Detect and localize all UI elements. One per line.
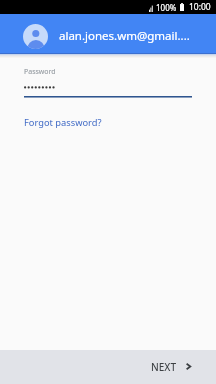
button[interactable]: Account [23,24,48,49]
button[interactable]: Forgot password? [24,116,102,129]
button[interactable]: Password [24,67,192,98]
staticText: Password [24,67,56,77]
staticText: NEXT [151,360,177,374]
staticText: 10:00 [189,1,211,13]
staticText: alan.jones.wm@gmail.... [59,28,190,44]
staticText: 100% [156,2,177,13]
button[interactable]: NEXT [151,350,191,384]
staticText: Forgot password? [24,116,102,129]
